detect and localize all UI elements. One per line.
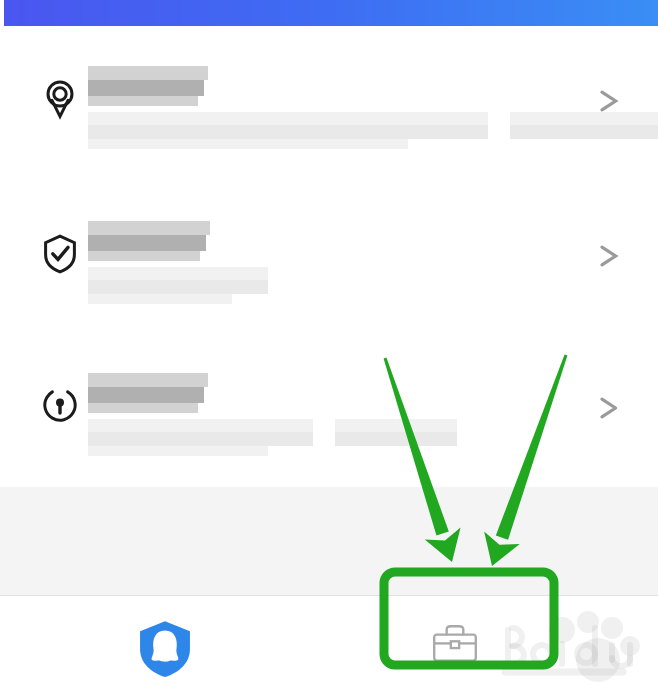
button[interactable]: List item [0, 357, 658, 509]
button[interactable]: List item [0, 50, 658, 202]
button[interactable]: Security [0, 596, 329, 692]
button[interactable]: List item [0, 205, 658, 357]
button[interactable]: Toolbox [329, 596, 658, 692]
